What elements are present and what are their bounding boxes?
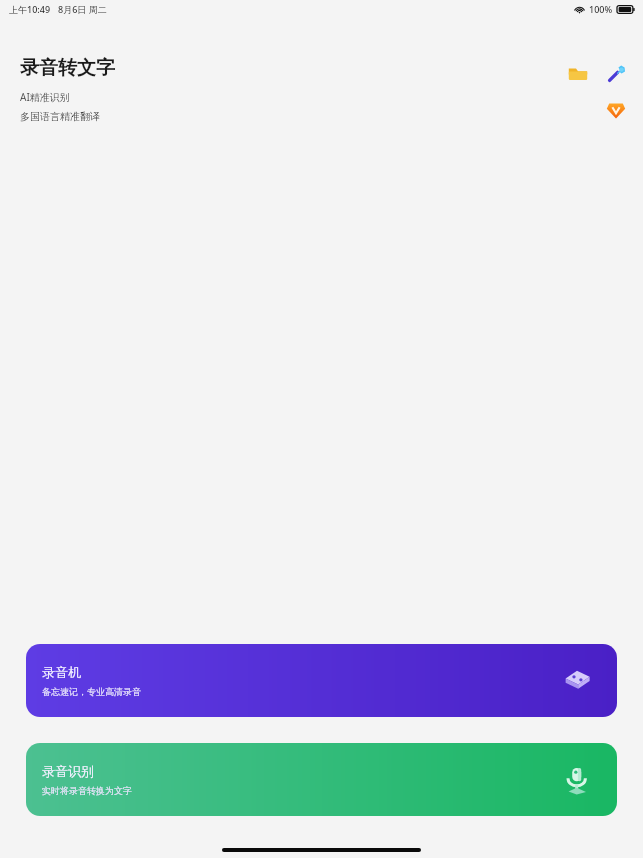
staticText: 上午10:49	[9, 3, 51, 15]
staticText: 实时将录音转换为文字	[42, 785, 132, 796]
staticText: 100%	[589, 3, 613, 15]
staticText: 录音机	[42, 664, 81, 680]
staticText: 录音转文字	[20, 56, 115, 80]
staticText: 8月6日 周二	[58, 3, 107, 15]
button[interactable]: Settings	[601, 59, 631, 89]
button[interactable]: VIP	[601, 95, 631, 125]
other: Recorder	[559, 663, 595, 699]
staticText: 多国语言精准翻译	[20, 110, 100, 123]
staticText: 录音识别	[42, 763, 94, 779]
staticText: 备忘速记，专业高清录音	[42, 686, 141, 697]
button[interactable]: Files	[563, 59, 593, 89]
staticText: AI精准识别	[20, 90, 70, 104]
button[interactable]: 录音机	[26, 644, 617, 717]
other: Speech to text	[559, 762, 595, 798]
button[interactable]: 录音识别	[26, 743, 617, 816]
